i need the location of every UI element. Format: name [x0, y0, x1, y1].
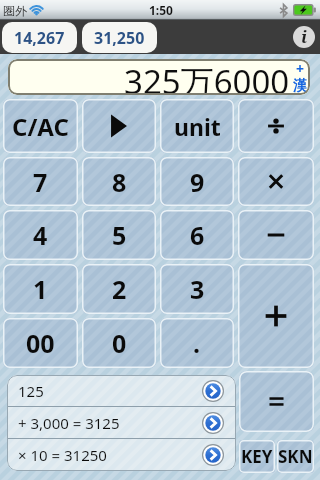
staticText: + 3,000 = 3125: [18, 413, 120, 433]
staticText: 2: [112, 272, 127, 306]
other: Bluetooth: [279, 4, 288, 17]
button[interactable]: equals: [239, 371, 314, 432]
staticText: 4: [33, 218, 48, 252]
button[interactable]: 4: [3, 210, 78, 260]
staticText: SKN: [278, 445, 313, 468]
staticText: unit: [174, 111, 221, 142]
staticText: 1:50: [149, 2, 173, 18]
staticText: 漢: [293, 77, 307, 95]
staticText: 圏外: [3, 3, 27, 18]
button[interactable]: 2: [82, 264, 156, 314]
button[interactable]: minus: [238, 210, 314, 260]
staticText: 7: [33, 165, 48, 199]
button[interactable]: 00: [3, 318, 78, 368]
staticText: 6: [190, 218, 205, 252]
staticText: 3: [190, 272, 205, 306]
button[interactable]: plus: [238, 264, 314, 368]
button[interactable]: 0: [82, 318, 156, 368]
staticText: 325万6000: [124, 59, 290, 95]
button[interactable]: 8: [82, 157, 156, 206]
button[interactable]: Details: [202, 444, 224, 466]
staticText: +: [296, 59, 305, 78]
staticText: 1: [33, 272, 48, 306]
staticText: 5: [112, 218, 127, 252]
button[interactable]: + 3,000 = 3125: [7, 407, 236, 439]
button[interactable]: C/AC: [3, 99, 78, 153]
button[interactable]: Info: [293, 26, 315, 48]
button[interactable]: Details: [202, 412, 224, 434]
staticText: 00: [26, 326, 55, 360]
button[interactable]: KEY: [239, 440, 275, 473]
button[interactable]: 1: [3, 264, 78, 314]
staticText: 9: [190, 165, 205, 199]
button[interactable]: unit: [160, 99, 234, 153]
other: Battery charging: [293, 4, 316, 16]
button[interactable]: divide: [238, 99, 314, 153]
staticText: 8: [112, 165, 127, 199]
button[interactable]: 31,250: [82, 22, 157, 53]
button[interactable]: 6: [160, 210, 234, 260]
button[interactable]: 125: [7, 375, 236, 407]
other: Wi-Fi: [30, 5, 43, 16]
staticText: 125: [18, 381, 44, 401]
button[interactable]: 9: [160, 157, 234, 206]
button[interactable]: 3: [160, 264, 234, 314]
button[interactable]: SKN: [277, 440, 314, 473]
button[interactable]: Details: [202, 380, 224, 402]
staticText: .: [193, 326, 201, 360]
button[interactable]: 5: [82, 210, 156, 260]
staticText: 0: [112, 326, 127, 360]
button[interactable]: 7: [3, 157, 78, 206]
button[interactable]: .: [160, 318, 234, 368]
staticText: C/AC: [12, 110, 69, 143]
staticText: 31,250: [94, 27, 145, 49]
staticText: i: [301, 26, 308, 47]
button[interactable]: 14,267: [2, 22, 77, 53]
staticText: × 10 = 31250: [18, 445, 107, 465]
button[interactable]: × 10 = 31250: [7, 439, 236, 471]
staticText: 14,267: [14, 27, 65, 49]
button[interactable]: multiply: [238, 157, 314, 206]
button[interactable]: play: [82, 99, 156, 153]
staticText: KEY: [241, 445, 273, 468]
